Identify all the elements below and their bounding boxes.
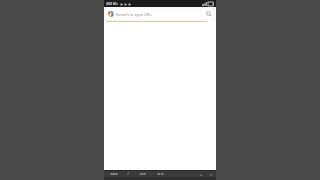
button[interactable]: Search or type URL: [106, 9, 214, 19]
button[interactable]: www: [104, 171, 123, 177]
button[interactable]: ←: [196, 171, 206, 177]
staticText: ←: [200, 173, 203, 176]
staticText: /: [127, 172, 129, 176]
staticText: .com: [139, 172, 146, 176]
button[interactable]: .com: [133, 171, 151, 177]
staticText: 60.0 B/s: [106, 2, 118, 6]
staticText: Search or type URL: [116, 12, 206, 17]
staticText: www: [110, 172, 118, 176]
button[interactable]: Search: [206, 11, 212, 17]
button[interactable]: ↵: [206, 171, 216, 177]
button[interactable]: co.in: [151, 171, 169, 177]
button[interactable]: /: [123, 171, 133, 177]
staticText: ↵: [210, 173, 213, 176]
staticText: co.in: [157, 172, 164, 176]
